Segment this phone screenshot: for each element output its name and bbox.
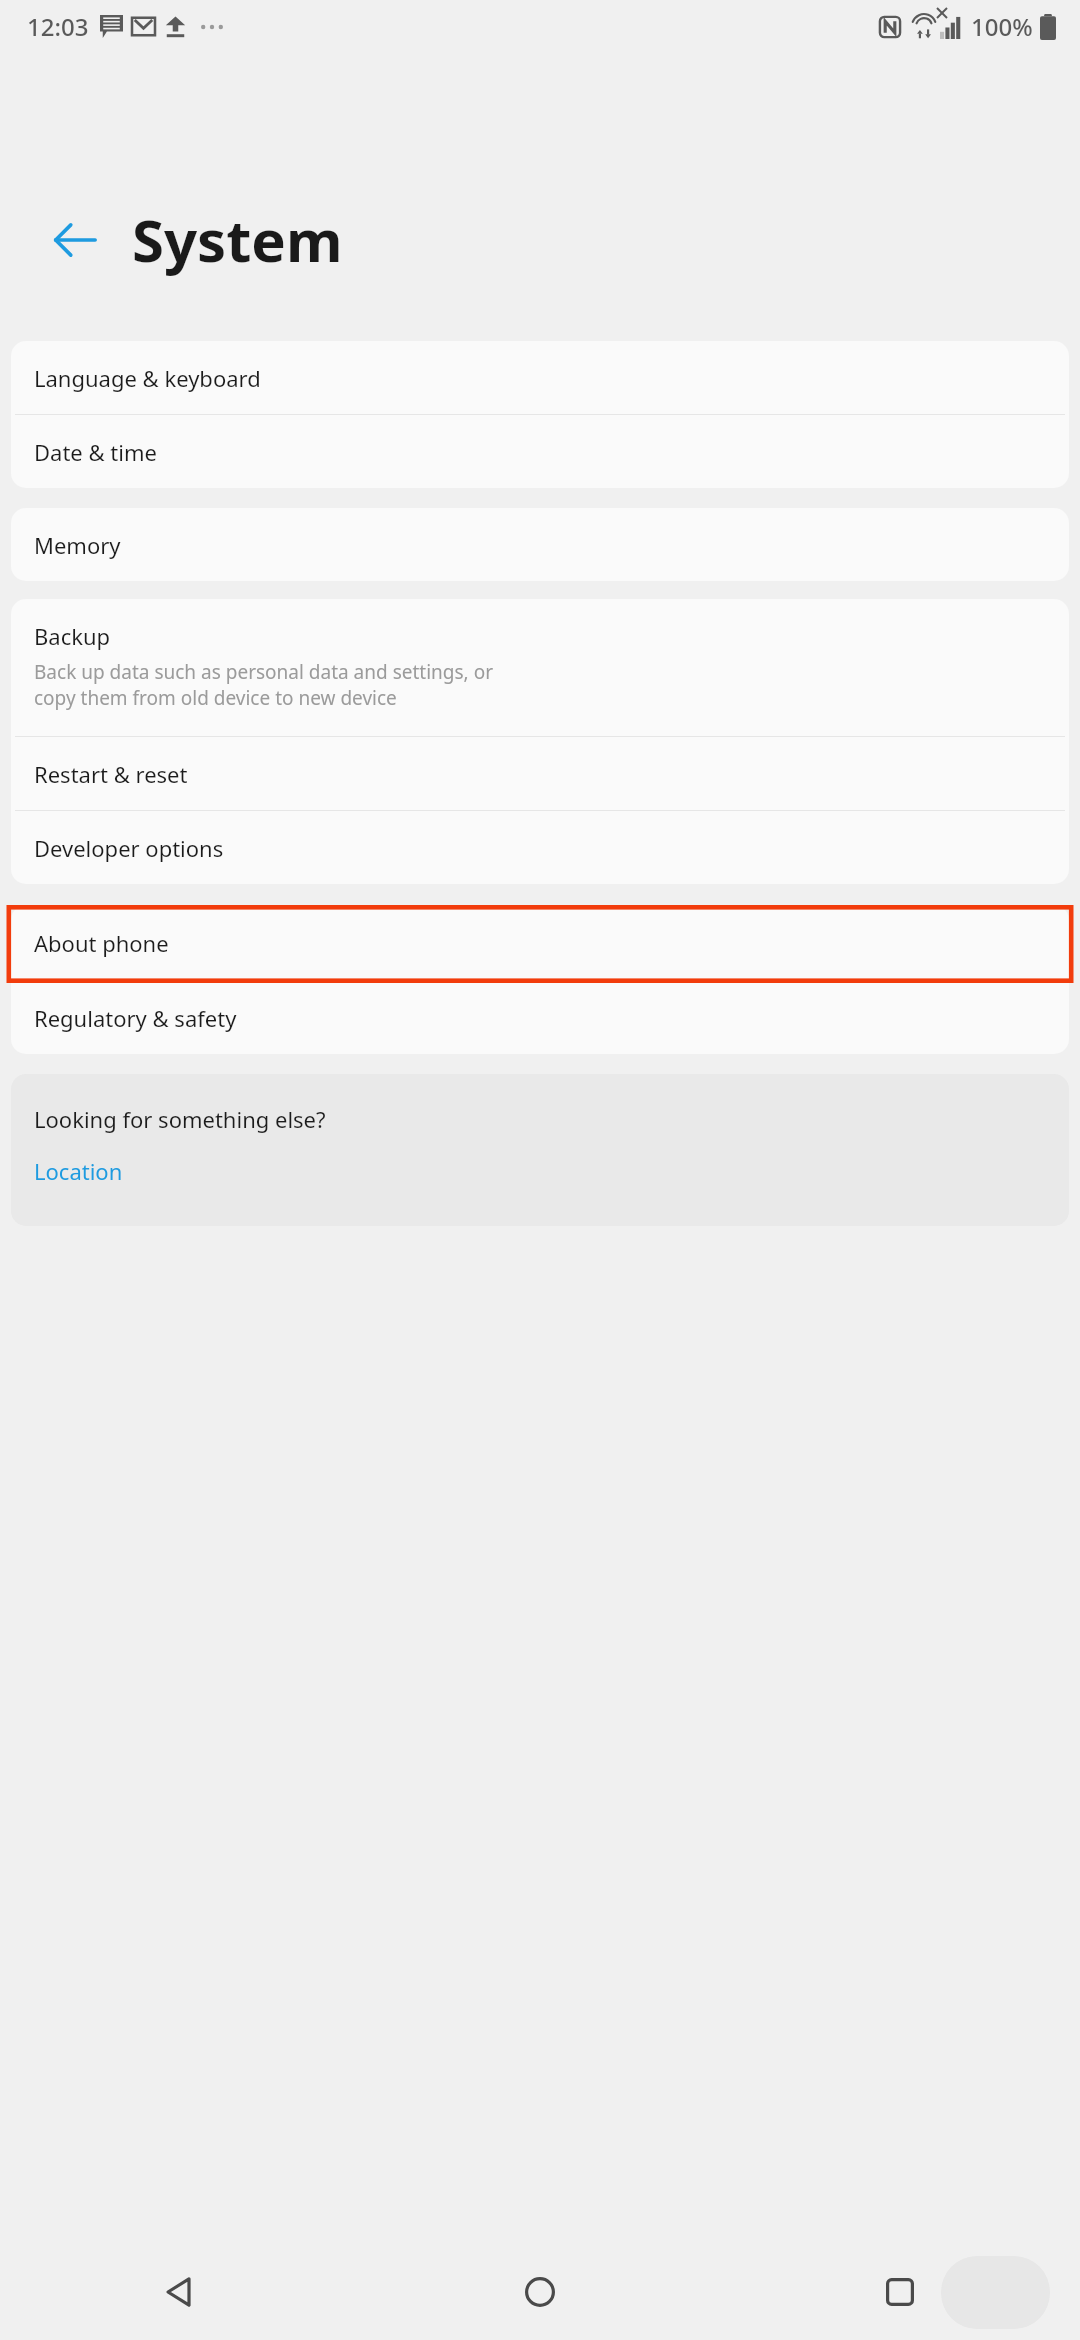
staticText: 12:03 [27,10,89,43]
button[interactable]: Back [44,209,106,271]
button[interactable]: Restart & reset [11,737,1069,810]
staticText: Backup [34,621,111,651]
staticText: Looking for something else? [34,1104,326,1134]
staticText: Language & keyboard [34,363,261,393]
button[interactable]: Memory [11,508,1069,581]
button[interactable]: Language & keyboard [11,341,1069,414]
staticText: Date & time [34,437,157,467]
button[interactable]: About phone [11,905,1069,981]
staticText: 100% [971,10,1033,43]
staticText: Memory [34,530,121,560]
button[interactable]: Developer options [11,811,1069,884]
staticText: Restart & reset [34,759,188,789]
staticText: Back up data such as personal data and s… [34,659,493,710]
button[interactable]: Date & time [11,415,1069,488]
staticText: System [132,200,343,279]
button[interactable]: Location [34,1156,123,1186]
staticText: About phone [34,928,169,958]
staticText: Developer options [34,833,224,863]
button[interactable]: Regulatory & safety [11,981,1069,1054]
button[interactable]: Backup [11,599,1069,736]
button[interactable]: Back [0,2244,360,2340]
staticText: Regulatory & safety [34,1003,237,1033]
button[interactable]: Recent apps [720,2244,1080,2340]
button[interactable]: Home [360,2244,720,2340]
